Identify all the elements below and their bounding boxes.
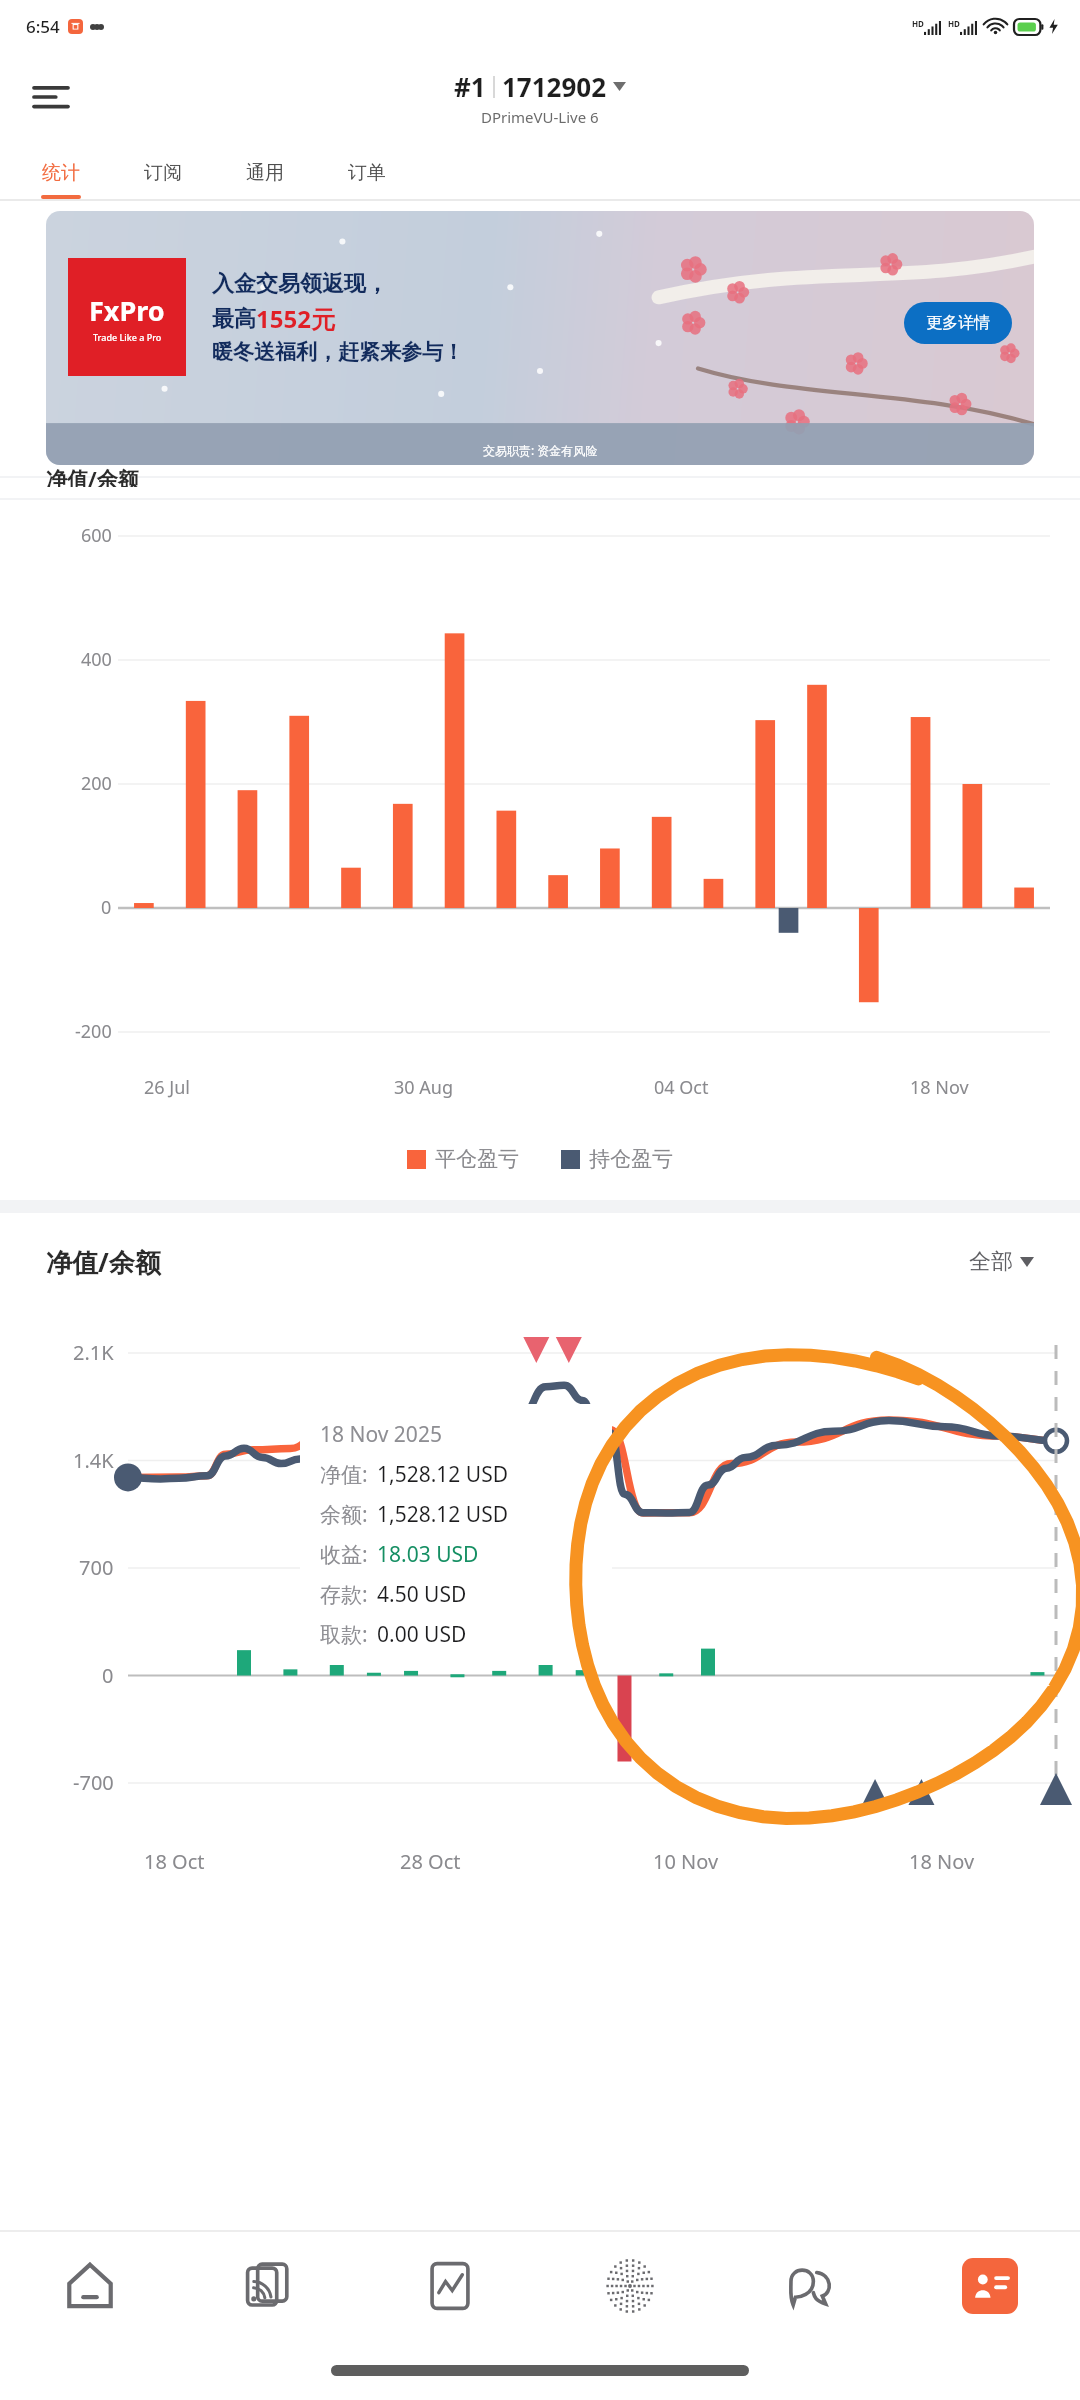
staticText: #1 [454, 69, 486, 104]
staticText: 18.03 USD [377, 1540, 479, 1569]
staticText: 更多详情 [926, 313, 990, 333]
staticText: 18 Nov 2025 [320, 1420, 442, 1449]
button[interactable]: 订单 [316, 144, 418, 201]
staticText: 2.1K [73, 1339, 114, 1366]
staticText: 26 Jul [144, 1075, 190, 1100]
staticText: 净值/余额 [46, 465, 139, 487]
staticText: 400 [81, 647, 112, 672]
staticText: 订单 [348, 161, 386, 185]
staticText: 取款: [320, 1620, 368, 1649]
staticText: 存款: [320, 1580, 368, 1609]
staticText: 全部 [969, 1248, 1013, 1276]
staticText: 统计 [42, 161, 80, 185]
staticText: 700 [79, 1554, 114, 1581]
staticText: 18 Oct [144, 1848, 205, 1875]
staticText: -700 [73, 1769, 114, 1796]
staticText: 余额: [320, 1500, 368, 1529]
staticText: 10 Nov [653, 1848, 719, 1875]
button[interactable]: Menu [22, 69, 80, 127]
staticText: 订阅 [144, 161, 182, 185]
button[interactable]: Charts [360, 2232, 540, 2340]
staticText: 18 Nov [909, 1848, 975, 1875]
staticText: 通用 [246, 161, 284, 185]
staticText: DPrimeVU-Live 6 [481, 107, 599, 127]
button[interactable]: #1 [454, 69, 626, 127]
staticText: 1,528.12 USD [377, 1500, 508, 1529]
staticText: 暖冬送福利，赶紧来参与！ [212, 339, 464, 365]
staticText: HD [948, 18, 960, 29]
staticText: HD [912, 18, 924, 29]
button[interactable]: 订阅 [112, 144, 214, 201]
staticText: 4.50 USD [377, 1580, 467, 1609]
button[interactable]: 通用 [214, 144, 316, 201]
button[interactable]: 全部 [969, 1248, 1034, 1276]
staticText: 200 [81, 771, 112, 796]
staticText: 04 Oct [654, 1075, 709, 1100]
staticText: 净值: [320, 1460, 368, 1489]
staticText: 1552元 [256, 302, 335, 335]
button[interactable]: Trade [540, 2232, 720, 2340]
staticText: 0.00 USD [377, 1620, 467, 1649]
staticText: 入金交易领返现， [212, 270, 388, 298]
staticText: 0 [102, 1662, 114, 1689]
staticText: 18 Nov [910, 1075, 969, 1100]
button[interactable]: Home [0, 2232, 180, 2340]
staticText: 平仓盈亏 [435, 1146, 519, 1172]
staticText: 最高 [212, 305, 256, 333]
staticText: 持仓盈亏 [589, 1146, 673, 1172]
staticText: Trade Like a Pro [93, 331, 162, 343]
staticText: 净值/余额 [46, 1244, 161, 1280]
button[interactable]: FxPro [46, 211, 1034, 465]
staticText: 0 [101, 895, 112, 920]
staticText: -200 [75, 1019, 112, 1044]
staticText: 6:54 [26, 15, 60, 38]
button[interactable]: Quotes [180, 2232, 360, 2340]
staticText: 1712902 [502, 69, 607, 104]
staticText: 交易职责: 资金有风险 [483, 442, 598, 458]
staticText: 1,528.12 USD [377, 1460, 508, 1489]
staticText: 1.4K [73, 1447, 114, 1474]
button[interactable]: Accounts [900, 2232, 1080, 2340]
staticText: 收益: [320, 1540, 368, 1569]
staticText: 30 Aug [394, 1075, 453, 1100]
button[interactable]: Messages [720, 2232, 900, 2340]
staticText: 28 Oct [400, 1848, 461, 1875]
staticText: FxPro [89, 292, 165, 329]
staticText: 600 [81, 523, 112, 548]
button[interactable]: 更多详情 [904, 302, 1012, 344]
button[interactable]: 统计 [10, 144, 112, 201]
